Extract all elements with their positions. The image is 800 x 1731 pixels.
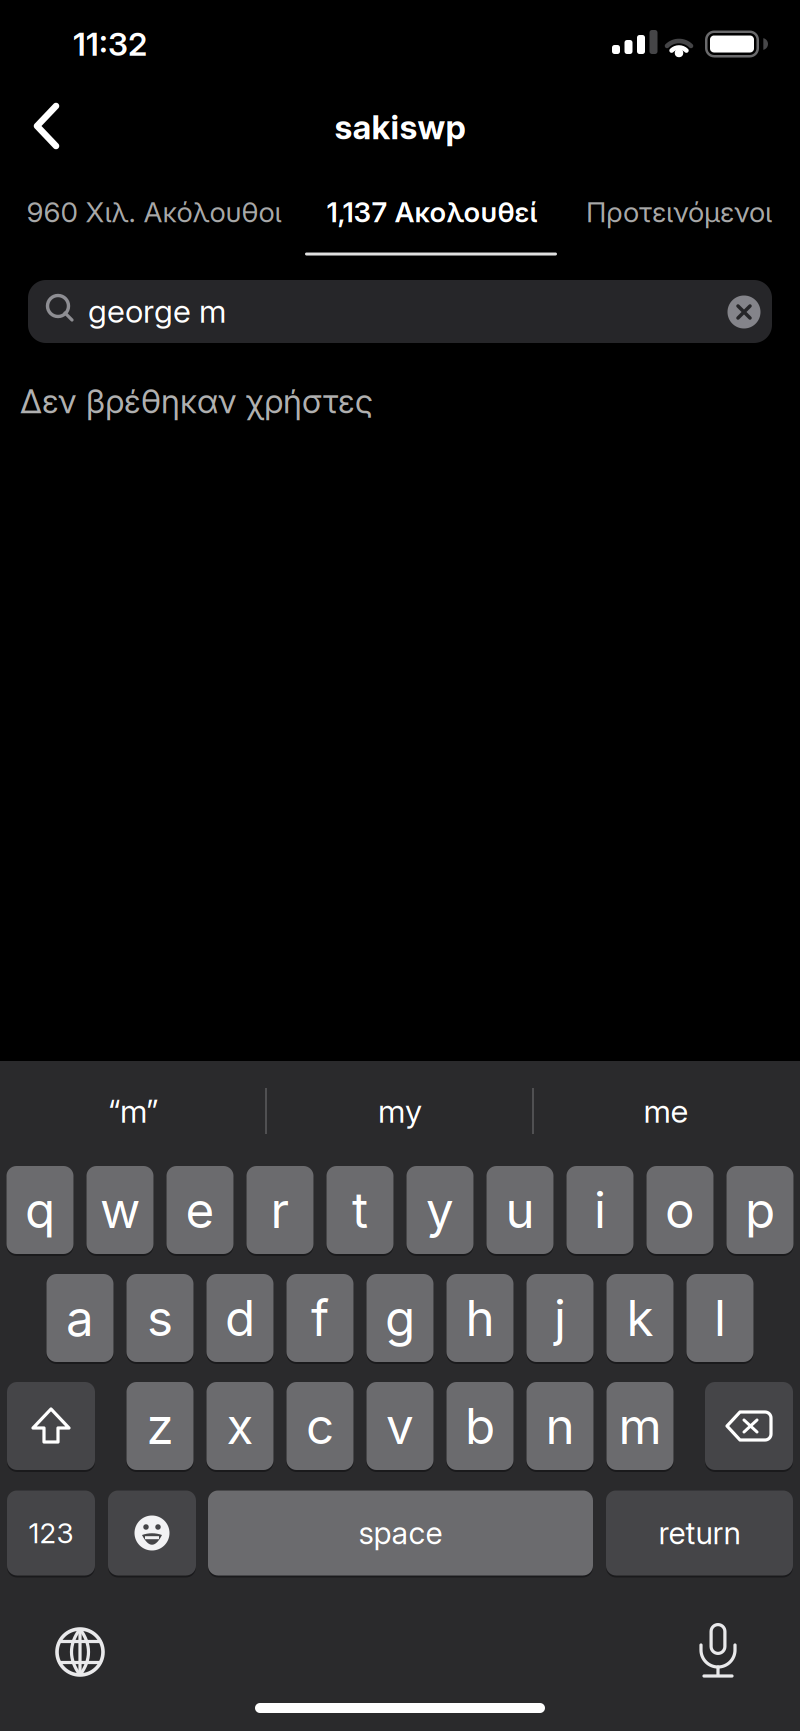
staticText: 123 (28, 1516, 73, 1549)
button[interactable]: s (126, 1274, 193, 1362)
staticText: q (25, 1181, 55, 1239)
staticText: m (618, 1397, 661, 1455)
staticText: o (665, 1181, 695, 1239)
staticText: x (226, 1397, 253, 1455)
staticText: j (554, 1289, 566, 1347)
button[interactable]: t (326, 1166, 393, 1254)
button[interactable]: Clear search text (727, 295, 760, 328)
button[interactable]: Next keyboard (50, 1622, 110, 1682)
staticText: space (358, 1515, 442, 1551)
staticText: k (626, 1289, 653, 1347)
button[interactable]: k (606, 1274, 673, 1362)
staticText: “m” (108, 1092, 158, 1130)
button[interactable]: 960 Χιλ. Ακόλουθοι (26, 172, 281, 252)
staticText: u (505, 1181, 534, 1239)
button[interactable]: Back (14, 96, 74, 156)
button[interactable]: n (526, 1382, 593, 1470)
button[interactable]: Search (28, 280, 772, 343)
button[interactable]: return (606, 1490, 793, 1575)
button[interactable]: Emoji (108, 1490, 196, 1575)
staticText: a (66, 1289, 94, 1347)
button[interactable]: Delete (705, 1382, 793, 1470)
staticText: return (658, 1515, 740, 1551)
button[interactable]: p (726, 1166, 793, 1254)
button[interactable]: r (246, 1166, 313, 1254)
button[interactable]: h (446, 1274, 513, 1362)
button[interactable]: l (686, 1274, 753, 1362)
button[interactable]: d (206, 1274, 273, 1362)
staticText: w (100, 1181, 140, 1239)
staticText: george m (88, 292, 226, 330)
staticText: v (386, 1397, 414, 1455)
button[interactable]: Dictate (688, 1619, 748, 1681)
button[interactable]: g (366, 1274, 433, 1362)
staticText: r (270, 1181, 289, 1239)
staticText: 1,137 Ακολουθεί (326, 195, 537, 228)
staticText: f (311, 1289, 329, 1347)
button[interactable]: me (541, 1065, 791, 1157)
button[interactable]: Προτεινόμενοι (586, 172, 772, 252)
button[interactable]: u (486, 1166, 553, 1254)
button[interactable]: my (275, 1065, 525, 1157)
staticText: sakiswp (334, 107, 465, 147)
staticText: l (714, 1289, 726, 1347)
staticText: Δεν βρέθηκαν χρήστες (20, 381, 373, 421)
staticText: y (426, 1181, 454, 1239)
staticText: t (352, 1181, 368, 1239)
button[interactable]: a (46, 1274, 113, 1362)
button[interactable]: q (6, 1166, 73, 1254)
staticText: b (465, 1397, 495, 1455)
staticText: Προτεινόμενοι (586, 195, 772, 228)
staticText: 11:32 (73, 25, 147, 63)
button[interactable]: v (366, 1382, 433, 1470)
staticText: h (465, 1289, 494, 1347)
button[interactable]: y (406, 1166, 473, 1254)
button[interactable]: space (208, 1490, 593, 1575)
button[interactable]: c (286, 1382, 353, 1470)
button[interactable]: m (606, 1382, 673, 1470)
button[interactable]: b (446, 1382, 513, 1470)
button[interactable]: 123 (7, 1490, 95, 1575)
staticText: 960 Χιλ. Ακόλουθοι (26, 195, 281, 228)
button[interactable]: 1,137 Ακολουθεί (326, 172, 537, 252)
button[interactable]: x (206, 1382, 273, 1470)
staticText: i (594, 1181, 606, 1239)
button[interactable]: “m” (8, 1065, 258, 1157)
button[interactable]: f (286, 1274, 353, 1362)
staticText: my (378, 1092, 422, 1130)
staticText: z (146, 1397, 173, 1455)
button[interactable]: z (126, 1382, 193, 1470)
staticText: g (385, 1289, 415, 1347)
button[interactable]: w (86, 1166, 153, 1254)
button[interactable]: o (646, 1166, 713, 1254)
button[interactable]: e (166, 1166, 233, 1254)
staticText: e (185, 1181, 214, 1239)
button[interactable]: Shift (7, 1382, 95, 1470)
staticText: n (545, 1397, 574, 1455)
staticText: s (147, 1289, 173, 1347)
staticText: me (643, 1092, 688, 1130)
staticText: p (745, 1181, 775, 1239)
staticText: c (306, 1397, 334, 1455)
button[interactable]: i (566, 1166, 633, 1254)
staticText: d (225, 1289, 255, 1347)
button[interactable]: j (526, 1274, 593, 1362)
